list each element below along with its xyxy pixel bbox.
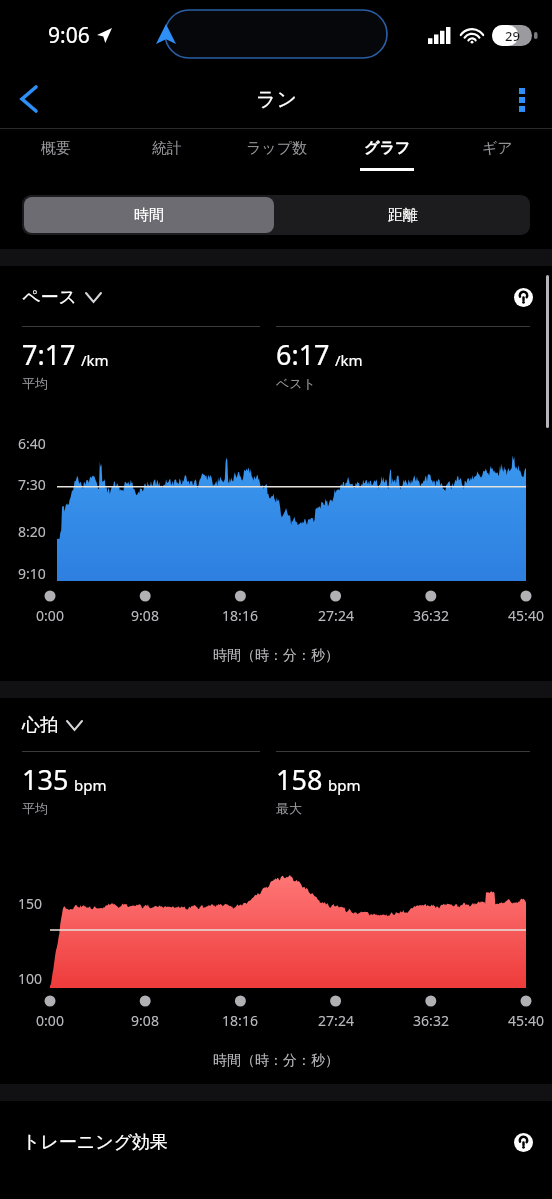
staticText: ラップ数 [246, 139, 308, 158]
staticText: 統計 [152, 139, 182, 158]
staticText: ラン [256, 87, 297, 112]
staticText: 18:16 [216, 606, 264, 625]
staticText: 距離 [388, 206, 418, 225]
staticText: 27:24 [312, 1011, 360, 1030]
staticText: 100 [18, 969, 43, 988]
button[interactable]: 距離 [276, 195, 530, 235]
button[interactable]: 時間 [24, 197, 274, 233]
staticText: ベスト [276, 375, 316, 391]
staticText: 6:40 [18, 434, 46, 453]
button[interactable]: 統計 [111, 129, 222, 181]
button[interactable]: Help [508, 282, 538, 312]
button[interactable]: 概要 [0, 129, 111, 181]
staticText: 9:08 [121, 606, 169, 625]
staticText: ギア [482, 139, 513, 158]
button[interactable]: ギア [442, 129, 552, 181]
staticText: 36:32 [407, 606, 455, 625]
staticText: 150 [18, 894, 43, 913]
staticText: 時間 [134, 206, 164, 225]
staticText: 7:30 [18, 475, 46, 494]
button[interactable]: Back [6, 76, 52, 122]
staticText: 0:00 [26, 606, 74, 625]
staticText: 29 [505, 27, 520, 45]
staticText: 9:10 [18, 564, 46, 583]
staticText: 9:08 [121, 1011, 169, 1030]
staticText: ペース [22, 286, 77, 309]
staticText: 時間（時：分：秒） [0, 647, 552, 665]
staticText: 45:40 [502, 606, 550, 625]
button[interactable]: ペース [22, 286, 101, 309]
staticText: 8:20 [18, 522, 46, 541]
staticText: 36:32 [407, 1011, 455, 1030]
staticText: トレーニング効果 [22, 1131, 169, 1154]
staticText: 45:40 [502, 1011, 550, 1030]
button[interactable]: ラップ数 [222, 129, 332, 181]
staticText: 最大 [276, 800, 302, 816]
staticText: bpm [74, 775, 107, 795]
staticText: 9:06 [48, 21, 90, 50]
staticText: グラフ [364, 139, 411, 158]
staticText: 平均 [22, 800, 48, 816]
staticText: 27:24 [312, 606, 360, 625]
staticText: 平均 [22, 375, 48, 391]
staticText: 158 [276, 761, 323, 798]
button[interactable]: 心拍 [22, 714, 82, 737]
staticText: 18:16 [216, 1011, 264, 1030]
button[interactable]: Help [508, 1127, 538, 1157]
button[interactable]: More options [500, 77, 544, 121]
staticText: bpm [328, 775, 361, 795]
staticText: 時間（時：分：秒） [0, 1052, 552, 1070]
staticText: /km [335, 350, 363, 370]
staticText: 心拍 [22, 714, 58, 737]
button[interactable]: グラフ [332, 129, 442, 181]
staticText: 概要 [41, 139, 71, 158]
staticText: /km [81, 350, 109, 370]
staticText: 135 [22, 761, 69, 798]
staticText: 0:00 [26, 1011, 74, 1030]
staticText: 6:17 [276, 336, 330, 373]
staticText: 7:17 [22, 336, 76, 373]
